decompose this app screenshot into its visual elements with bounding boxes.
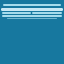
- button[interactable]: Title: [3, 4, 61, 6]
- button[interactable]: Secondary action: [2, 15, 62, 17]
- button[interactable]: Right chip: [32, 12, 62, 14]
- button[interactable]: Left chip: [2, 12, 31, 14]
- button[interactable]: Primary action: [1, 8, 63, 11]
